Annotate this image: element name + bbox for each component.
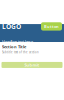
staticText: Submit bbox=[24, 62, 39, 68]
staticText: Button bbox=[44, 24, 59, 29]
button[interactable]: Submit bbox=[1, 62, 62, 68]
button[interactable]: Button bbox=[41, 22, 62, 31]
staticText: Section Title bbox=[2, 44, 26, 49]
staticText: Subtitle text of the section bbox=[2, 50, 39, 54]
staticText: LOGO bbox=[2, 22, 21, 31]
staticText: Headline text here bbox=[2, 39, 33, 44]
